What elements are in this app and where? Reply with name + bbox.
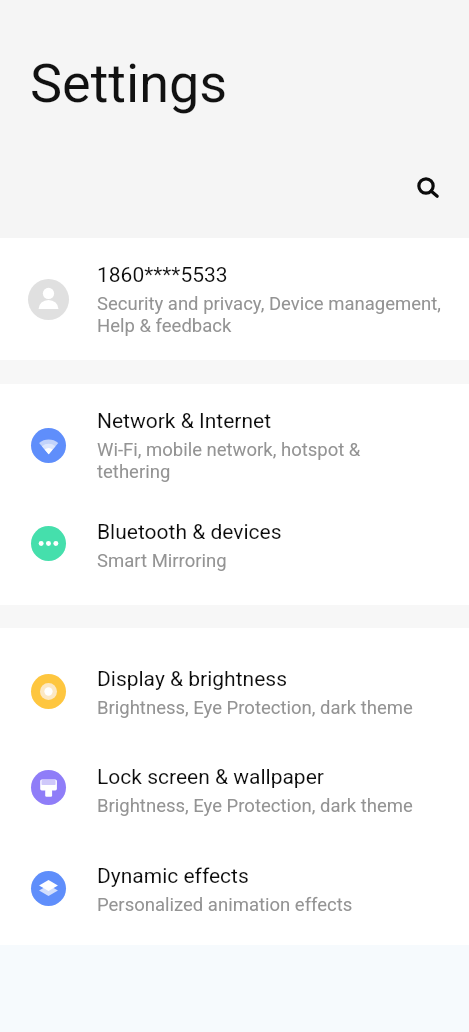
staticText: Brightness, Eye Protection, dark theme [97,697,413,719]
staticText: Wi-Fi, mobile network, hotspot & tetheri… [97,439,361,483]
staticText: 1860****5533 [97,263,228,288]
button[interactable]: 1860****5533 [0,238,469,361]
staticText: Display & brightness [97,667,287,692]
button[interactable]: Lock screen & wallpaper [0,742,469,840]
staticText: Dynamic effects [97,864,249,889]
button[interactable]: Network & Internet [0,384,469,507]
staticText: Lock screen & wallpaper [97,765,324,790]
staticText: Network & Internet [97,409,272,434]
staticText: Brightness, Eye Protection, dark theme [97,795,413,817]
staticText: Personalized animation effects [97,894,353,916]
staticText: Settings [30,52,228,115]
staticText: Bluetooth & devices [97,520,282,545]
staticText: Security and privacy, Device management,… [97,293,441,337]
staticText: Smart Mirroring [97,550,227,572]
button[interactable]: Display & brightness [0,644,469,742]
button[interactable]: Search [404,164,448,208]
button[interactable]: Bluetooth & devices [0,497,469,595]
button[interactable]: Dynamic effects [0,841,469,939]
